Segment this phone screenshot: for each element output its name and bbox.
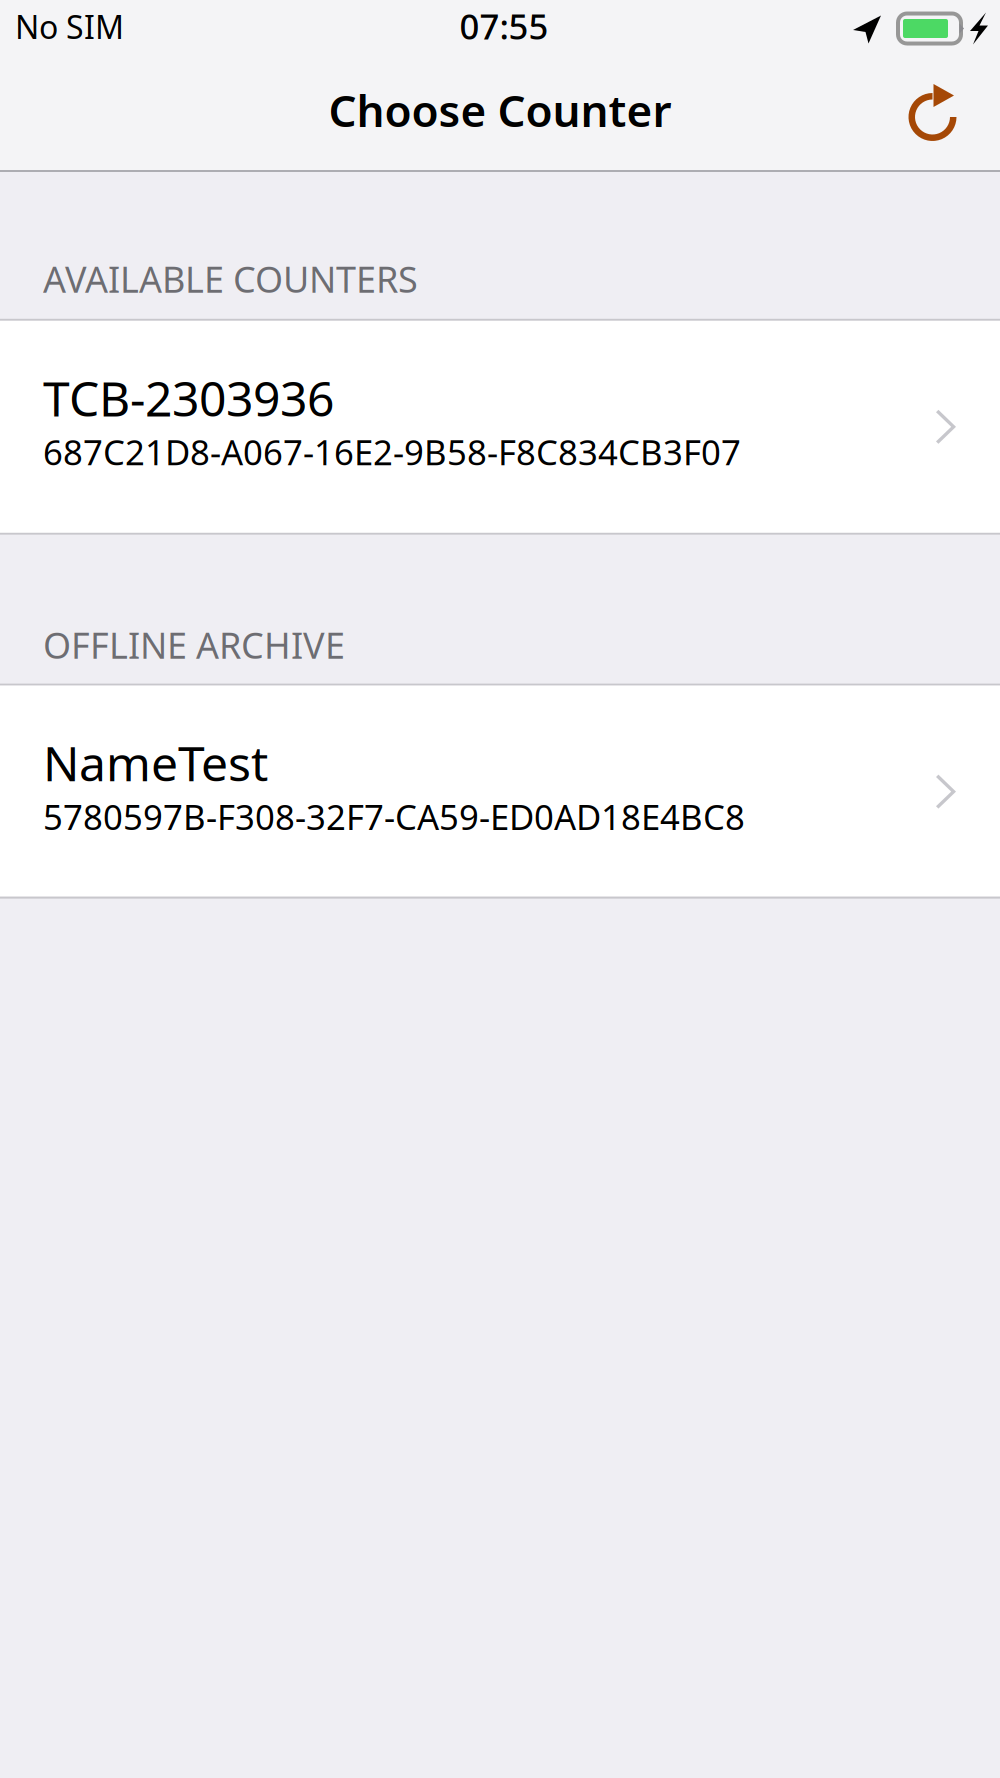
staticText: Choose Counter xyxy=(328,81,671,139)
button[interactable]: TCB-2303936 xyxy=(0,321,1000,533)
staticText: No SIM xyxy=(15,5,124,48)
staticText: 07:55 xyxy=(459,3,548,49)
staticText: 5780597B-F308-32F7-CA59-ED0AD18E4BC8 xyxy=(43,794,745,840)
staticText: OFFLINE ARCHIVE xyxy=(43,621,345,669)
staticText: NameTest xyxy=(43,731,268,794)
button[interactable]: NameTest xyxy=(0,686,1000,897)
staticText: 687C21D8-A067-16E2-9B58-F8C834CB3F07 xyxy=(43,429,741,475)
button[interactable]: Refresh xyxy=(882,60,1000,170)
staticText: AVAILABLE COUNTERS xyxy=(43,255,418,303)
staticText: TCB-2303936 xyxy=(43,366,334,430)
